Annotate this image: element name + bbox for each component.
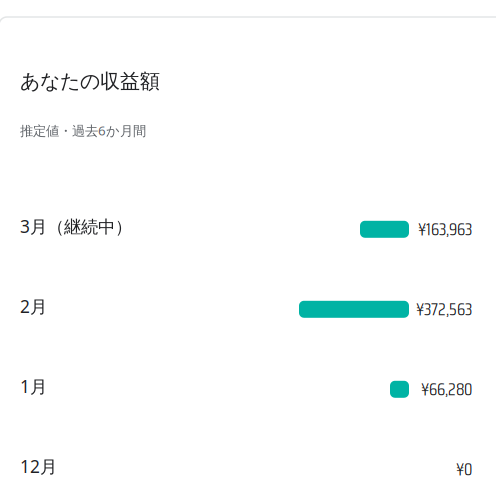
staticText: 12月: [20, 455, 57, 478]
staticText: ¥0: [456, 456, 472, 483]
staticText: 推定値・過去6か月間: [20, 122, 146, 139]
staticText: 2月: [20, 295, 47, 318]
button[interactable]: 2月: [20, 266, 476, 346]
staticText: ¥66,280: [421, 376, 472, 403]
button[interactable]: 1月: [20, 346, 476, 426]
button[interactable]: 12月: [20, 426, 476, 496]
staticText: 1月: [20, 375, 47, 398]
staticText: ¥372,563: [416, 296, 472, 323]
staticText: 3月（継続中）: [20, 215, 132, 238]
button[interactable]: 3月（継続中）: [20, 186, 476, 266]
staticText: あなたの収益額: [20, 69, 160, 94]
staticText: ¥163,963: [418, 216, 472, 243]
